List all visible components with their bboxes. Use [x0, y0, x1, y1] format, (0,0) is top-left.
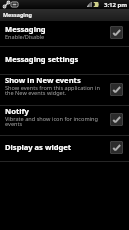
staticText: Show events from this application in the… [5, 84, 106, 97]
staticText: Messaging settings [5, 54, 79, 64]
staticText: Messaging [3, 11, 32, 18]
staticText: Display as widget [5, 142, 72, 152]
button[interactable]: Toggle setting [110, 141, 123, 154]
button[interactable]: Toggle setting [110, 83, 123, 96]
staticText: 3:12 pm [104, 1, 128, 9]
staticText: Messaging [5, 24, 46, 34]
button[interactable]: Messaging [0, 21, 129, 46]
button[interactable]: Toggle setting [110, 26, 123, 39]
staticText: Notify [5, 106, 29, 116]
staticText: Vibrate and show icon for incoming event… [5, 115, 106, 128]
button[interactable]: Notify [0, 106, 129, 135]
staticText: Enable/Disable [5, 33, 45, 41]
button[interactable]: Messaging settings [0, 47, 129, 74]
button[interactable]: Display as widget [0, 136, 129, 161]
button[interactable]: Toggle setting [110, 113, 123, 126]
staticText: Show in New events [5, 75, 81, 85]
button[interactable]: Show in New events [0, 75, 129, 105]
